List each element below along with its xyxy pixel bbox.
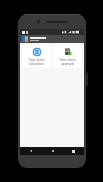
other: Time sheet approval [64,48,72,56]
button[interactable]: Recents [63,147,84,155]
other: Time sheet allocation [33,48,41,56]
button[interactable]: Time sheet approval [53,45,82,68]
staticText: Time sheet approval [59,58,76,66]
button[interactable]: Back [20,147,42,155]
button[interactable]: Time sheet allocation [22,45,51,68]
staticText: Time sheet allocation [28,58,45,66]
button[interactable]: Home [42,147,63,155]
